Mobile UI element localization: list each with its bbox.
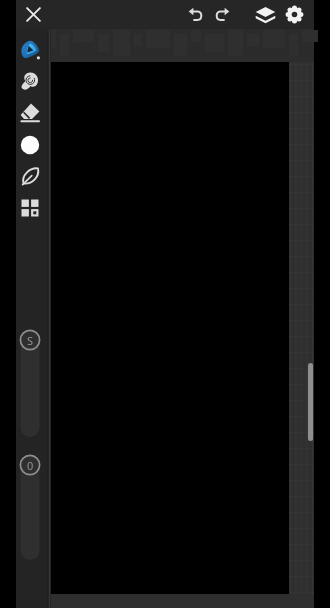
button[interactable]: Symmetry [16,162,44,190]
button[interactable]: Settings [280,0,309,29]
button[interactable]: Colour [16,131,44,159]
button[interactable]: Close [19,0,48,29]
button[interactable]: Patterns [16,194,44,222]
button[interactable]: Smudge [16,67,44,95]
staticText: 0 [27,458,34,473]
button[interactable]: Redo [208,0,237,29]
button[interactable]: Brush [16,36,44,64]
button[interactable]: Eraser [16,98,44,126]
staticText: S [27,333,34,348]
button[interactable]: Layers [251,0,280,29]
button[interactable]: Undo [181,0,210,29]
